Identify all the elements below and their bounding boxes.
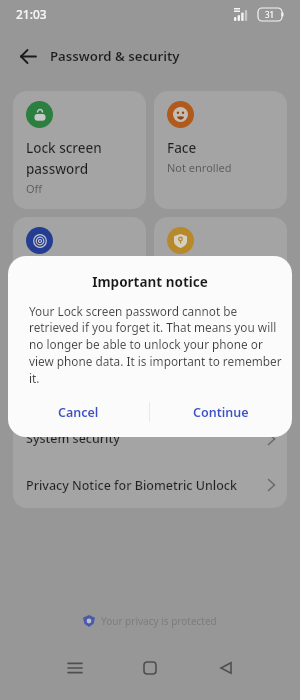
button[interactable] [55,655,95,681]
button[interactable]: System security [13,415,287,462]
button[interactable]: Lock screen password [13,91,146,209]
staticText: Lock screen password [26,139,102,178]
button[interactable]: Cancel [8,387,149,437]
staticText: 31 [265,9,275,20]
staticText: Privacy Notice for Biometric Unlock [26,477,237,494]
staticText: Not enrolled [167,160,232,175]
staticText: Your Lock screen password cannot be retr… [29,303,282,387]
button[interactable] [14,42,42,70]
button[interactable] [130,655,170,681]
button[interactable] [205,655,245,681]
button[interactable]: Your privacy is protected [83,612,217,630]
staticText: Password & security [50,47,180,65]
staticText: Your privacy is protected [101,614,217,628]
button[interactable] [154,217,287,335]
staticText: 21:03 [16,6,47,22]
button[interactable]: Continue [150,387,292,437]
button[interactable]: Face [154,91,287,209]
staticText: Important notice [8,273,292,291]
button[interactable] [13,217,146,335]
staticText: System security [26,430,120,447]
staticText: Cancel [58,404,99,421]
staticText: Face [167,139,197,157]
staticText: Off [26,181,43,196]
button[interactable]: Privacy Notice for Biometric Unlock [13,462,287,508]
staticText: Continue [193,404,249,421]
